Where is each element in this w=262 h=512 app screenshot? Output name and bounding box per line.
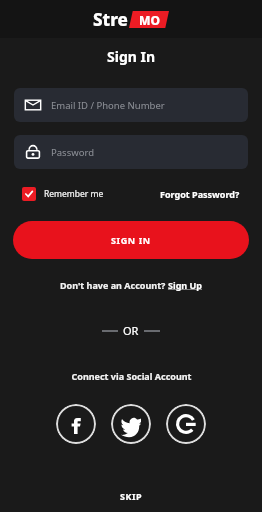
staticText: Sign In (107, 47, 156, 66)
button[interactable]: Remember me (22, 187, 104, 201)
button[interactable]: Email ID / Phone Number (14, 88, 248, 122)
staticText: Connect via Social Account (71, 370, 192, 382)
button[interactable]: Sign in with Twitter (111, 404, 151, 444)
button[interactable]: Forgot Password? (160, 188, 240, 200)
button[interactable]: Password (14, 135, 248, 169)
staticText: Sign Up (168, 279, 203, 291)
staticText: SKIP (120, 490, 143, 502)
staticText: MO (139, 12, 160, 28)
staticText: Email ID / Phone Number (51, 99, 165, 112)
staticText: Stre (93, 8, 128, 31)
staticText: OR (123, 323, 139, 338)
button[interactable]: Sign in with Google (166, 404, 206, 444)
staticText: Remember me (44, 188, 104, 200)
staticText: Forgot Password? (160, 188, 240, 200)
button[interactable]: SIGN IN (13, 221, 249, 259)
staticText: SIGN IN (111, 234, 151, 246)
button[interactable]: Sign Up (168, 279, 203, 291)
staticText: Don't have an Account? (60, 279, 168, 291)
staticText: Password (51, 146, 94, 159)
button[interactable]: SKIP (0, 480, 262, 512)
button[interactable]: Sign in with Facebook (56, 404, 96, 444)
